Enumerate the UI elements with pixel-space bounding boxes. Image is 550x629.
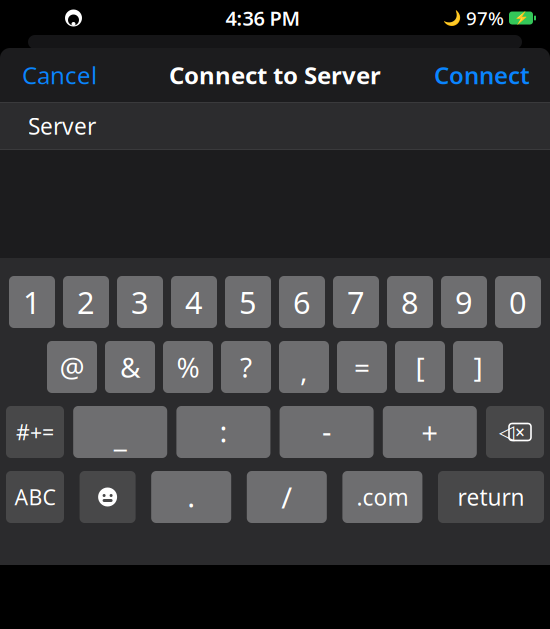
staticText: 5 <box>239 282 257 322</box>
staticText: : <box>219 411 227 450</box>
button[interactable]: ABC <box>6 471 64 523</box>
button[interactable]: [ <box>395 341 445 393</box>
button[interactable]: = <box>337 341 387 393</box>
button[interactable]: 2 <box>63 276 109 328</box>
button[interactable]: Server <box>0 103 550 149</box>
staticText: 0 <box>509 282 527 322</box>
button[interactable]: ? <box>221 341 271 393</box>
staticText: - <box>322 411 331 450</box>
staticText: ? <box>240 348 252 386</box>
button[interactable]: 6 <box>279 276 325 328</box>
button[interactable]: 0 <box>495 276 541 328</box>
button[interactable]: _ <box>73 406 167 458</box>
staticText: 🌙 <box>443 10 461 26</box>
staticText: ] <box>473 348 482 386</box>
staticText: 4:36 PM <box>225 5 300 31</box>
staticText: @ <box>59 348 84 386</box>
staticText: ◁ <box>499 421 514 443</box>
staticText: & <box>120 348 140 386</box>
staticText: 2 <box>77 282 95 322</box>
button[interactable]: #+= <box>6 406 64 458</box>
button[interactable]: 9 <box>441 276 487 328</box>
staticText: 97% <box>466 6 504 30</box>
staticText: Connect <box>434 59 530 91</box>
staticText: / <box>281 477 292 516</box>
button[interactable]: 8 <box>387 276 433 328</box>
staticText: , <box>300 352 308 389</box>
staticText: 8 <box>401 282 419 322</box>
button[interactable]: Connect <box>414 48 550 102</box>
button[interactable]: Emoji <box>80 471 136 523</box>
staticText: % <box>176 348 199 386</box>
staticText: Connect to Server <box>169 59 381 91</box>
button[interactable]: 3 <box>117 276 163 328</box>
button[interactable]: : <box>176 406 270 458</box>
staticText: Cancel <box>22 59 97 91</box>
button[interactable]: / <box>247 471 327 523</box>
button[interactable]: + <box>383 406 477 458</box>
button[interactable]: , <box>279 341 329 393</box>
staticText: 9 <box>455 282 473 322</box>
staticText: × <box>515 420 525 443</box>
button[interactable]: ] <box>453 341 503 393</box>
staticText: .com <box>356 482 408 512</box>
staticText: 4 <box>185 282 203 322</box>
button[interactable]: . <box>151 471 231 523</box>
staticText: _ <box>114 415 127 454</box>
button[interactable]: 1 <box>9 276 55 328</box>
staticText: . <box>187 476 195 515</box>
staticText: ABC <box>14 483 55 511</box>
staticText: 3 <box>131 282 149 322</box>
staticText: 6 <box>293 282 311 322</box>
staticText: ⚡ <box>513 11 528 25</box>
button[interactable]: & <box>105 341 155 393</box>
button[interactable]: @ <box>47 341 97 393</box>
staticText: return <box>457 482 524 512</box>
staticText: 1 <box>23 282 41 322</box>
button[interactable]: 5 <box>225 276 271 328</box>
staticText: = <box>354 348 370 386</box>
staticText: Server <box>28 111 96 141</box>
staticText: 7 <box>347 282 365 322</box>
staticText: #+= <box>16 418 54 446</box>
button[interactable]: 4 <box>171 276 217 328</box>
button[interactable]: 7 <box>333 276 379 328</box>
staticText: + <box>421 412 438 451</box>
button[interactable]: return <box>438 471 544 523</box>
button[interactable]: Delete <box>486 406 544 458</box>
button[interactable]: % <box>163 341 213 393</box>
button[interactable]: - <box>280 406 374 458</box>
button[interactable]: Cancel <box>0 48 119 102</box>
staticText: [ <box>415 348 424 386</box>
button[interactable]: .com <box>342 471 422 523</box>
